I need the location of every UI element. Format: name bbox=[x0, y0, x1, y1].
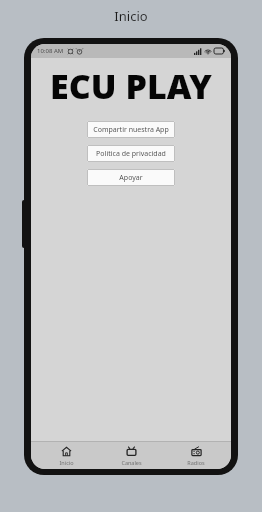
other: Canales bbox=[126, 446, 137, 457]
other: Inicio bbox=[61, 446, 72, 457]
button[interactable]: Política de privacidad bbox=[87, 145, 175, 162]
staticText: Radios bbox=[187, 459, 205, 466]
staticText: Apoyar bbox=[119, 173, 143, 183]
staticText: Política de privacidad bbox=[96, 149, 166, 159]
button[interactable]: Canales bbox=[101, 442, 161, 469]
button[interactable]: Inicio bbox=[36, 442, 96, 469]
button[interactable]: Compartir nuestra App bbox=[87, 121, 175, 138]
staticText: 10:08 AM bbox=[37, 47, 64, 55]
staticText: Canales bbox=[121, 459, 142, 466]
button[interactable]: Apoyar bbox=[87, 169, 175, 186]
other: Radios bbox=[191, 446, 202, 457]
button[interactable]: Radios bbox=[166, 442, 226, 469]
staticText: Compartir nuestra App bbox=[93, 125, 169, 135]
staticText: Inicio bbox=[0, 7, 262, 25]
staticText: Inicio bbox=[59, 459, 74, 466]
staticText: ECU PLAY bbox=[50, 63, 212, 109]
